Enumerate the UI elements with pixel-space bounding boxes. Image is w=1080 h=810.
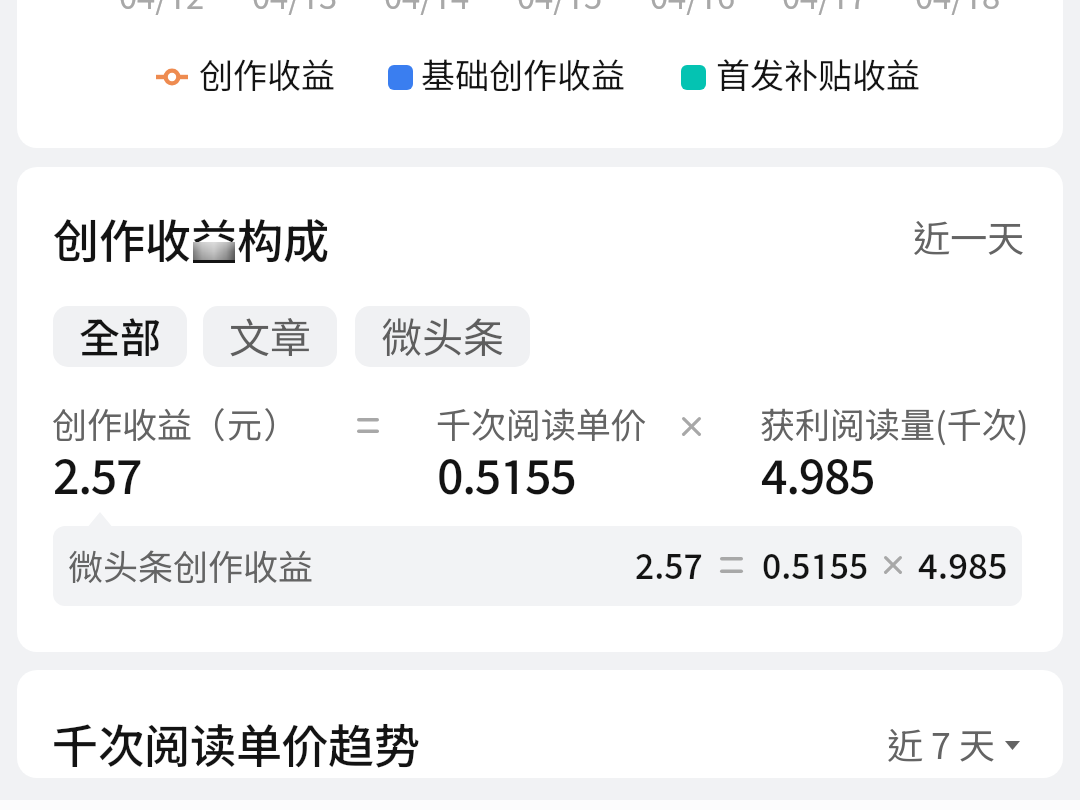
staticText: 微头条 bbox=[381, 313, 504, 361]
staticText: 04/16 bbox=[650, 0, 736, 16]
staticText: 近 7 天 bbox=[887, 724, 995, 766]
staticText: 千次阅读单价趋势 bbox=[52, 718, 420, 772]
staticText: 近一天 bbox=[913, 216, 1024, 260]
staticText: 0.5155 bbox=[762, 546, 869, 586]
staticText: 千次阅读单价 bbox=[436, 404, 647, 445]
button[interactable]: 微头条创作收益 bbox=[53, 526, 1022, 606]
staticText: 04/14 bbox=[384, 0, 470, 16]
staticText: 创作收益（元） bbox=[52, 404, 298, 445]
staticText: 创作收益 bbox=[199, 55, 335, 95]
button[interactable]: 微头条 bbox=[355, 306, 530, 367]
staticText: 2.57 bbox=[53, 447, 142, 502]
button[interactable]: 近 7 天 bbox=[887, 724, 1020, 766]
other: Change date range bbox=[1005, 741, 1020, 750]
staticText: 全部 bbox=[79, 313, 161, 361]
staticText: 04/17 bbox=[782, 0, 868, 16]
staticText: 4.985 bbox=[918, 545, 1008, 586]
button[interactable]: 全部 bbox=[53, 306, 187, 367]
staticText: 04/12 bbox=[119, 0, 205, 16]
staticText: 4.985 bbox=[761, 447, 875, 502]
button[interactable]: 文章 bbox=[203, 306, 337, 367]
staticText: 04/13 bbox=[252, 0, 338, 16]
staticText: 文章 bbox=[229, 313, 311, 361]
staticText: 首发补贴收益 bbox=[716, 55, 920, 95]
staticText: 04/15 bbox=[517, 0, 603, 16]
staticText: 04/18 bbox=[915, 0, 1001, 16]
staticText: 获利阅读量(千次) bbox=[760, 404, 1029, 445]
staticText: 0.5155 bbox=[437, 447, 576, 502]
staticText: 基础创作收益 bbox=[421, 55, 625, 95]
button[interactable]: 近一天 bbox=[913, 216, 1024, 260]
staticText: 微头条创作收益 bbox=[68, 546, 314, 587]
staticText: 2.57 bbox=[635, 546, 703, 586]
staticText: 创作收益构成 bbox=[53, 213, 329, 267]
